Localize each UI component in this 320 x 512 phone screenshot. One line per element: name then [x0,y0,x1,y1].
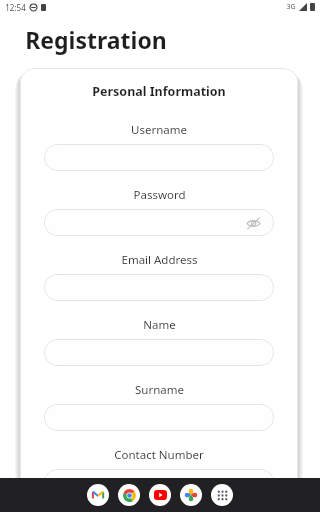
button[interactable]: Gmail [87,484,109,506]
staticText: Surname [135,382,184,398]
button[interactable]: Google Photos [180,484,202,506]
staticText: 12:54 [5,2,26,13]
staticText: Email Address [121,252,198,268]
staticText: Password [133,187,186,203]
button[interactable]: All apps [211,484,233,506]
staticText: Name [143,317,176,333]
button[interactable] [44,339,274,366]
staticText: Personal Information [92,83,226,100]
staticText: Registration [25,24,167,55]
staticText: 3G [286,2,296,12]
button[interactable] [44,404,274,431]
button[interactable]: Toggle password visibility [244,214,262,232]
button[interactable] [44,274,274,301]
button[interactable]: YouTube [149,484,171,506]
button[interactable] [44,144,274,171]
staticText: Contact Number [114,447,204,463]
button[interactable]: Toggle password visibility [44,209,274,236]
staticText: Username [131,122,187,138]
button[interactable]: Chrome [118,484,140,506]
button[interactable] [44,469,274,496]
